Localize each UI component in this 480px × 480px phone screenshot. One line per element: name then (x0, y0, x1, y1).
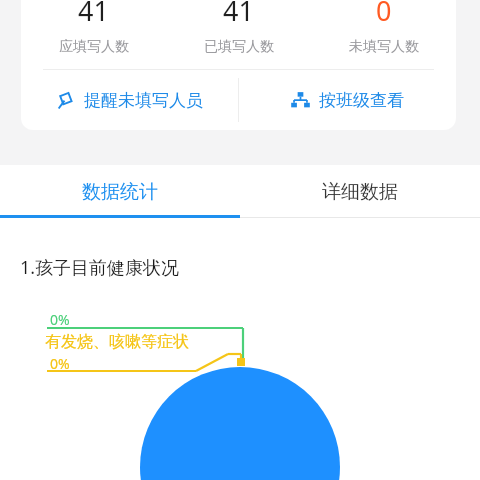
staticText: 0% (50, 310, 70, 329)
staticText: 已填写人数 (204, 38, 274, 56)
button[interactable]: 提醒未填写人员 (21, 70, 238, 130)
staticText: 应填写人数 (59, 38, 129, 56)
staticText: 0% (50, 354, 70, 373)
other: 提醒未填写人员 (56, 91, 75, 110)
staticText: 详细数据 (322, 180, 398, 204)
button[interactable]: 详细数据 (240, 165, 480, 218)
staticText: 0 (376, 0, 392, 29)
staticText: 未填写人数 (349, 38, 419, 56)
staticText: 提醒未填写人员 (84, 90, 203, 111)
staticText: 有发烧、咳嗽等症状 (45, 332, 189, 352)
other: 按班级查看 (291, 91, 310, 110)
staticText: 1.孩子目前健康状况 (20, 255, 180, 280)
staticText: 数据统计 (82, 180, 158, 204)
staticText: 41 (223, 0, 254, 29)
button[interactable]: 数据统计 (0, 165, 240, 218)
staticText: 41 (78, 0, 109, 29)
button[interactable]: 按班级查看 (239, 70, 456, 130)
staticText: 按班级查看 (319, 90, 404, 111)
